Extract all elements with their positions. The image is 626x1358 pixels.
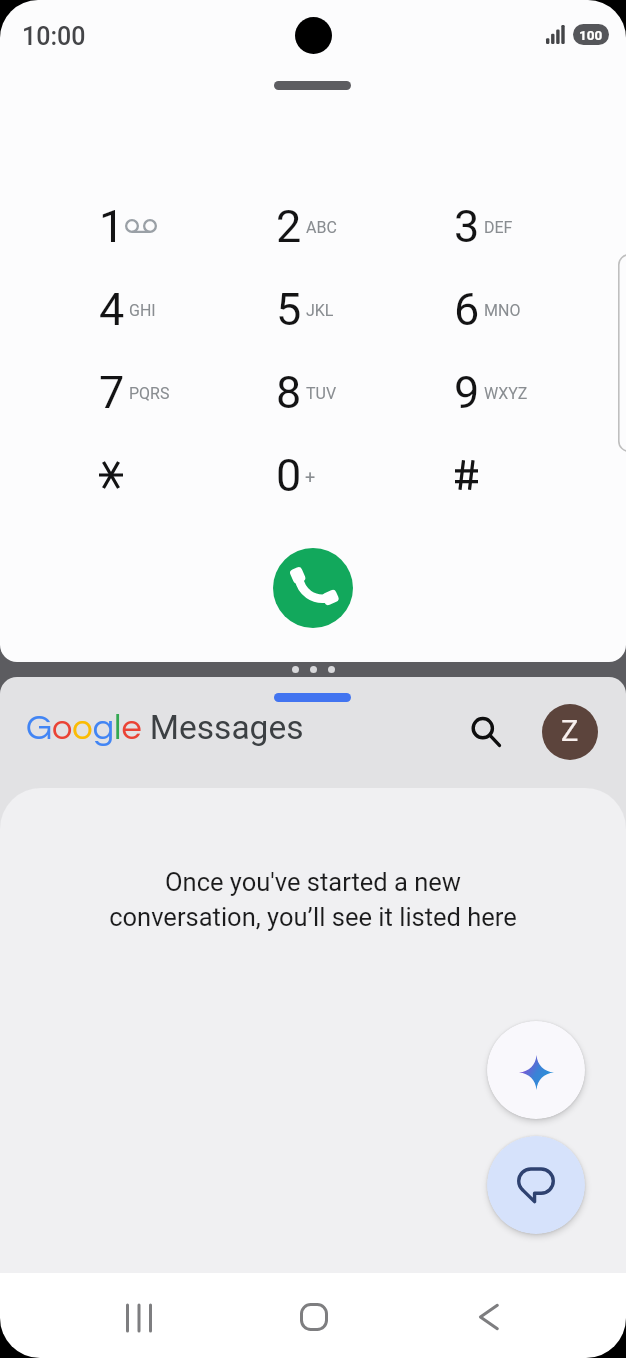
staticText: 3: [454, 200, 480, 253]
button[interactable]: 9: [418, 351, 568, 433]
staticText: GHI: [129, 301, 156, 320]
button[interactable]: Call: [273, 548, 353, 628]
staticText: MNO: [484, 301, 521, 320]
staticText: ABC: [306, 218, 337, 237]
staticText: 10:00: [22, 22, 86, 51]
staticText: PQRS: [129, 384, 170, 403]
staticText: Z: [561, 714, 579, 748]
staticText: Once you've started a new conversation, …: [109, 867, 517, 933]
button[interactable]: [418, 434, 568, 516]
button[interactable]: 3: [418, 185, 568, 267]
staticText: JKL: [306, 301, 334, 320]
button[interactable]: Recent apps: [113, 1292, 165, 1344]
button[interactable]: 7: [63, 351, 213, 433]
button[interactable]: [63, 434, 213, 516]
staticText: 1: [99, 200, 125, 253]
button[interactable]: Back: [463, 1291, 515, 1343]
button[interactable]: 8: [240, 351, 390, 433]
button[interactable]: 0: [240, 434, 390, 516]
button[interactable]: 1: [63, 185, 213, 267]
button[interactable]: Home: [288, 1291, 340, 1343]
button[interactable]: 6: [418, 268, 568, 350]
button[interactable]: Search: [462, 708, 510, 756]
staticText: 0: [276, 449, 302, 502]
staticText: TUV: [306, 384, 337, 403]
button[interactable]: Start chat: [487, 1136, 585, 1234]
button[interactable]: Gemini assistant: [487, 1021, 585, 1119]
staticText: 7: [99, 366, 125, 419]
staticText: +: [305, 466, 316, 487]
staticText: 2: [276, 200, 302, 253]
staticText: WXYZ: [484, 384, 528, 403]
staticText: DEF: [484, 218, 513, 237]
staticText: Google Messages: [26, 708, 304, 747]
staticText: 5: [276, 283, 302, 336]
staticText: 4: [99, 283, 125, 336]
staticText: 100: [579, 27, 603, 43]
button[interactable]: Account: [542, 704, 598, 760]
staticText: 9: [454, 366, 480, 419]
button[interactable]: 4: [63, 268, 213, 350]
staticText: 8: [276, 366, 302, 419]
button[interactable]: 5: [240, 268, 390, 350]
staticText: 6: [454, 283, 480, 336]
button[interactable]: 2: [240, 185, 390, 267]
